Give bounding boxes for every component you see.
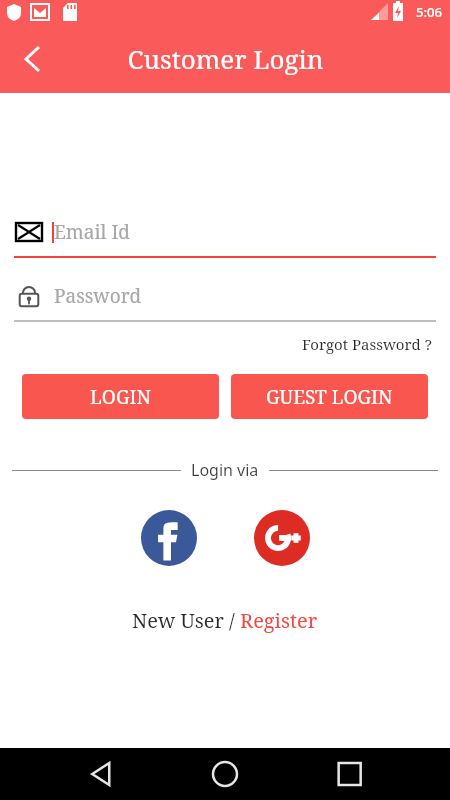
button[interactable]: New User / Register [128, 603, 322, 638]
staticText: Email Id [54, 219, 131, 245]
staticText: 5:06 [416, 3, 442, 21]
button[interactable]: Forgot Password ? [298, 330, 436, 358]
staticText: Customer Login [127, 41, 324, 76]
button[interactable]: Login with Facebook [141, 510, 197, 566]
button[interactable]: Email Id [14, 215, 436, 258]
staticText: Login via [191, 459, 259, 481]
button[interactable]: LOGIN [22, 374, 219, 419]
button[interactable]: Login with Google Plus [254, 510, 310, 566]
staticText: GUEST LOGIN [266, 384, 393, 410]
button[interactable]: Password [14, 279, 436, 322]
staticText: Password [54, 283, 142, 309]
button[interactable]: GUEST LOGIN [231, 374, 428, 419]
button[interactable]: Back [8, 37, 52, 81]
staticText: LOGIN [90, 384, 151, 410]
